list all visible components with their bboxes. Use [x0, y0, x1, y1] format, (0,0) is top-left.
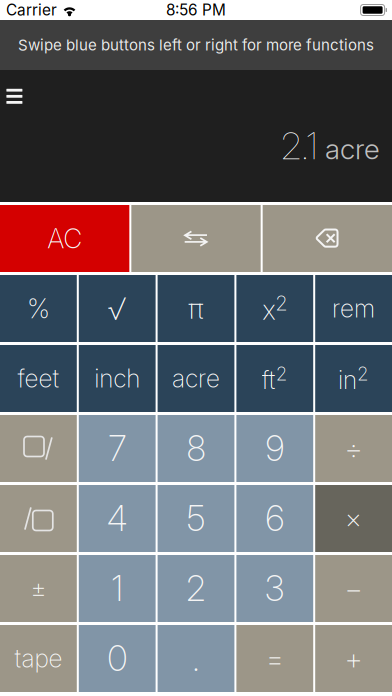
button[interactable]: 8	[158, 415, 234, 482]
staticText: ×	[345, 502, 362, 535]
button[interactable]: π	[158, 275, 234, 342]
staticText: −	[345, 571, 363, 606]
staticText: √	[108, 290, 126, 327]
staticText: 4	[107, 497, 128, 539]
staticText: ÷	[345, 431, 363, 466]
button[interactable]: Fraction	[0, 415, 77, 482]
staticText: 8	[186, 427, 205, 469]
staticText: 8:56 PM	[166, 1, 226, 19]
button[interactable]: =	[236, 625, 313, 692]
button[interactable]: AC	[0, 205, 129, 272]
button[interactable]: ±	[0, 555, 77, 622]
staticText: tape	[14, 644, 62, 673]
staticText: rem	[332, 294, 375, 323]
button[interactable]: in2	[315, 345, 392, 412]
button[interactable]: Inverse fraction	[0, 485, 77, 552]
button[interactable]: ×	[315, 485, 392, 552]
staticText: acre	[325, 132, 380, 166]
staticText: 3	[265, 567, 285, 609]
button[interactable]: ÷	[315, 415, 392, 482]
button[interactable]: Delete	[263, 205, 392, 272]
button[interactable]: Swap units	[131, 205, 261, 272]
staticText: ft2	[262, 362, 288, 394]
staticText: acre	[172, 364, 220, 393]
button[interactable]: 3	[236, 555, 313, 622]
button[interactable]: tape	[0, 625, 77, 692]
button[interactable]: rem	[315, 275, 392, 342]
button[interactable]: √	[79, 275, 156, 342]
staticText: π	[188, 292, 204, 325]
button[interactable]: 1	[79, 555, 156, 622]
staticText: 2.1	[281, 124, 318, 168]
button[interactable]: acre	[158, 345, 234, 412]
staticText: AC	[47, 222, 82, 255]
button[interactable]: 2	[158, 555, 234, 622]
staticText: ±	[30, 573, 46, 604]
staticText: +	[345, 641, 363, 676]
button[interactable]: 6	[236, 485, 313, 552]
staticText: in2	[338, 362, 369, 394]
button[interactable]: feet	[0, 345, 77, 412]
button[interactable]: 5	[158, 485, 234, 552]
staticText: 5	[186, 497, 205, 539]
staticText: 7	[108, 427, 126, 469]
button[interactable]: 9	[236, 415, 313, 482]
button[interactable]: −	[315, 555, 392, 622]
button[interactable]: %	[0, 275, 77, 342]
staticText: 2	[186, 567, 206, 609]
button[interactable]: +	[315, 625, 392, 692]
staticText: 6	[265, 497, 284, 539]
button[interactable]: ft2	[236, 345, 313, 412]
button[interactable]: x2	[236, 275, 313, 342]
button[interactable]: 0	[79, 625, 156, 692]
staticText: .	[192, 637, 200, 679]
staticText: Swipe blue buttons left or right for mor…	[18, 36, 374, 54]
staticText: 0	[107, 637, 127, 679]
button[interactable]: Menu	[0, 57, 36, 116]
staticText: x2	[262, 291, 287, 326]
button[interactable]: .	[158, 625, 234, 692]
staticText: inch	[94, 364, 140, 393]
staticText: %	[27, 292, 50, 325]
staticText: 1	[111, 567, 123, 609]
button[interactable]: 4	[79, 485, 156, 552]
staticText: 9	[265, 427, 284, 469]
staticText: Carrier	[6, 1, 57, 19]
button[interactable]: inch	[79, 345, 156, 412]
staticText: =	[266, 641, 284, 676]
button[interactable]: 7	[79, 415, 156, 482]
staticText: feet	[17, 364, 59, 393]
